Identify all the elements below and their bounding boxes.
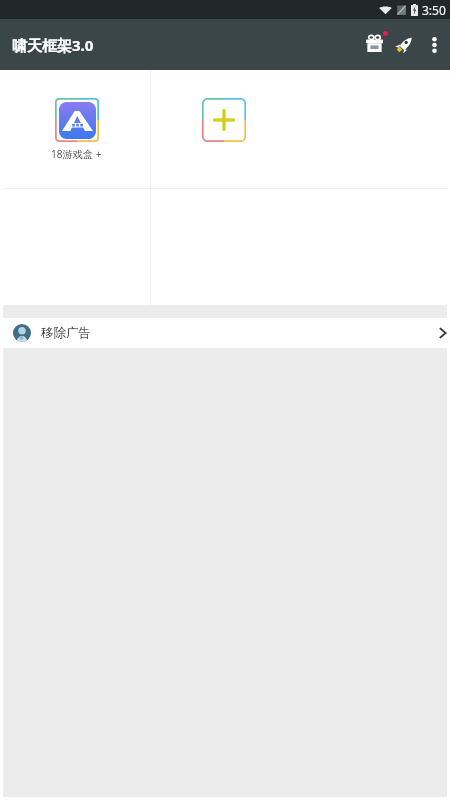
button[interactable]: Boost (390, 32, 416, 58)
staticText: 18游戏盒 + (51, 147, 102, 161)
button[interactable]: 18游戏盒 + (3, 70, 150, 187)
staticText: 移除广告 (41, 325, 91, 341)
button[interactable]: 移除广告 (3, 318, 447, 348)
button[interactable]: Gifts (359, 31, 387, 59)
staticText: 3:50 (422, 2, 446, 18)
button[interactable]: Add app (150, 70, 297, 187)
button[interactable]: More options (421, 32, 447, 58)
staticText: 啸天框架3.0 (12, 35, 94, 55)
